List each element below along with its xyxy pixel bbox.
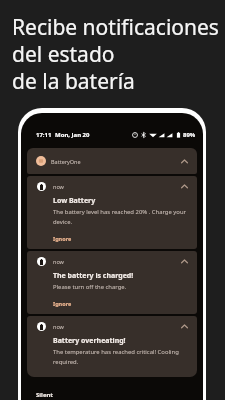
staticText: 17:11: [36, 131, 52, 139]
staticText: Silent: [36, 391, 53, 399]
button[interactable]: Ignore: [53, 235, 72, 242]
staticText: now: [53, 258, 64, 265]
staticText: The battery is charged!: [53, 271, 134, 281]
staticText: Recibe notificaciones del estado de la b…: [12, 13, 219, 95]
button[interactable]: BatteryOne: [27, 148, 197, 174]
staticText: Battery overheating!: [53, 336, 126, 346]
button[interactable]: now: [27, 251, 197, 314]
staticText: The temperature has reached critical! Co…: [53, 348, 188, 366]
button[interactable]: now: [27, 316, 197, 377]
staticText: now: [53, 183, 64, 190]
staticText: Low Battery: [53, 196, 96, 206]
staticText: BatteryOne: [51, 158, 81, 165]
staticText: Mon, Jan 20: [55, 131, 90, 139]
staticText: The battery level has reached 20% . Char…: [53, 208, 188, 226]
staticText: 89%: [183, 131, 196, 139]
staticText: now: [53, 323, 64, 330]
button[interactable]: now: [27, 176, 197, 249]
button[interactable]: Ignore: [53, 300, 72, 307]
staticText: Please turn off the charge.: [53, 283, 127, 291]
